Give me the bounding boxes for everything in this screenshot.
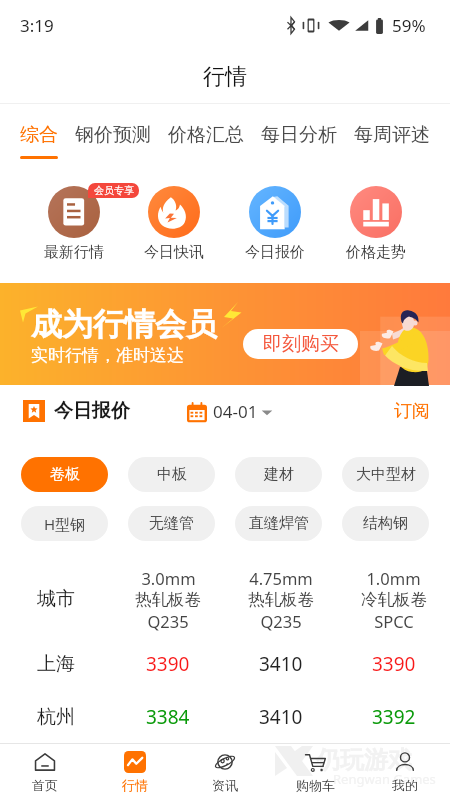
button[interactable]: 综合	[20, 103, 58, 169]
staticText: 1.0mm	[366, 567, 421, 589]
staticText: 价格走势	[346, 243, 406, 262]
button[interactable]: 今日报价	[224, 180, 325, 262]
button[interactable]: 钢价预测	[75, 103, 151, 169]
button[interactable]: 每日分析	[261, 103, 337, 169]
button[interactable]: 大中型材	[342, 457, 429, 492]
button[interactable]: 即刻购买	[243, 329, 358, 359]
button[interactable]: 每周评述	[354, 103, 430, 169]
staticText: 每周评述	[354, 123, 430, 147]
staticText: 行情	[203, 63, 247, 91]
staticText: 卷板	[50, 465, 80, 484]
staticText: 3390	[146, 651, 190, 677]
button[interactable]: 价格汇总	[168, 103, 244, 169]
staticText: 直缝焊管	[249, 514, 309, 533]
staticText: 大中型材	[356, 465, 416, 484]
staticText: 我的	[392, 777, 418, 793]
staticText: 上海	[37, 652, 75, 676]
button[interactable]: 价格走势	[325, 180, 426, 262]
button[interactable]: 04-01	[186, 400, 273, 423]
staticText: 59%	[392, 14, 426, 37]
button[interactable]: 会员专享	[24, 180, 124, 262]
staticText: H型钢	[44, 514, 86, 534]
staticText: 3392	[372, 704, 416, 730]
staticText: 冷轧板卷	[361, 589, 427, 610]
staticText: 3390	[372, 651, 416, 677]
staticText: 综合	[20, 123, 58, 147]
staticText: 每日分析	[261, 123, 337, 147]
staticText: 3:19	[20, 14, 54, 37]
staticText: 订阅	[394, 400, 430, 423]
staticText: 热轧板卷	[135, 589, 201, 610]
staticText: 即刻购买	[263, 332, 339, 356]
button[interactable]: 中板	[128, 457, 215, 492]
staticText: Q235	[147, 610, 189, 632]
staticText: 无缝管	[149, 514, 194, 533]
button[interactable]: 订阅	[394, 400, 430, 423]
staticText: Rengwan Games	[333, 770, 436, 788]
staticText: 建材	[264, 465, 294, 484]
staticText: 仍玩游戏	[316, 745, 412, 775]
staticText: 今日快讯	[144, 243, 204, 262]
staticText: 热轧板卷	[248, 589, 314, 610]
staticText: 4.75mm	[249, 567, 313, 589]
staticText: 首页	[32, 777, 58, 793]
staticText: 价格汇总	[168, 123, 244, 147]
staticText: 资讯	[212, 777, 238, 793]
button[interactable]: 上海	[0, 637, 450, 690]
staticText: 钢价预测	[75, 123, 151, 147]
button[interactable]: 今日快讯	[124, 180, 224, 262]
button[interactable]: 首页	[0, 744, 90, 800]
staticText: 今日报价	[245, 243, 305, 262]
staticText: 结构钢	[363, 514, 408, 533]
staticText: 3.0mm	[141, 567, 196, 589]
staticText: 3410	[259, 704, 303, 730]
staticText: 今日报价	[54, 399, 130, 423]
button[interactable]: 无缝管	[128, 506, 215, 541]
staticText: 最新行情	[44, 243, 104, 262]
staticText: 杭州	[37, 705, 75, 729]
button[interactable]: 我的	[360, 744, 450, 800]
button[interactable]: 资讯	[180, 744, 270, 800]
staticText: Q235	[260, 610, 302, 632]
staticText: 会员专享	[94, 184, 134, 197]
button[interactable]: H型钢	[21, 506, 108, 541]
staticText: 成为行情会员	[31, 305, 217, 344]
staticText: 行情	[122, 777, 148, 793]
staticText: 3384	[146, 704, 190, 730]
button[interactable]: 建材	[235, 457, 322, 492]
staticText: 购物车	[296, 777, 335, 793]
staticText: 实时行情，准时送达	[31, 345, 184, 366]
button[interactable]: 结构钢	[342, 506, 429, 541]
button[interactable]: 成为行情会员	[0, 283, 450, 385]
staticText: 中板	[157, 465, 187, 484]
button[interactable]: 杭州	[0, 690, 450, 743]
staticText: 城市	[37, 587, 75, 611]
staticText: 04-01	[213, 400, 258, 423]
staticText: SPCC	[374, 610, 414, 632]
button[interactable]: 直缝焊管	[235, 506, 322, 541]
staticText: 3410	[259, 651, 303, 677]
button[interactable]: 行情	[90, 744, 180, 800]
button[interactable]: 购物车	[270, 744, 360, 800]
button[interactable]: 卷板	[21, 457, 108, 492]
